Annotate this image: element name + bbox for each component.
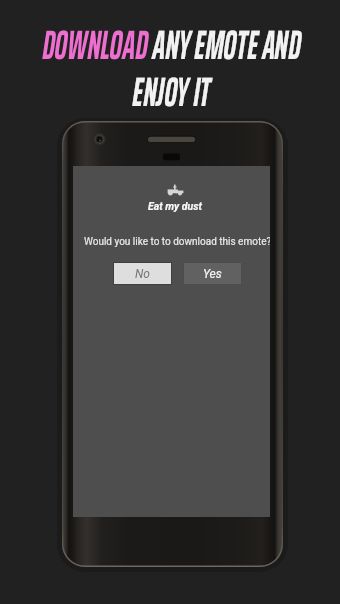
staticText: Yes — [203, 267, 222, 281]
staticText: No — [135, 267, 150, 281]
button[interactable]: Yes — [183, 262, 242, 285]
staticText: Eat my dust — [148, 200, 202, 212]
staticText: Would you like to to download this emote… — [84, 236, 270, 248]
button[interactable]: No — [113, 262, 172, 285]
